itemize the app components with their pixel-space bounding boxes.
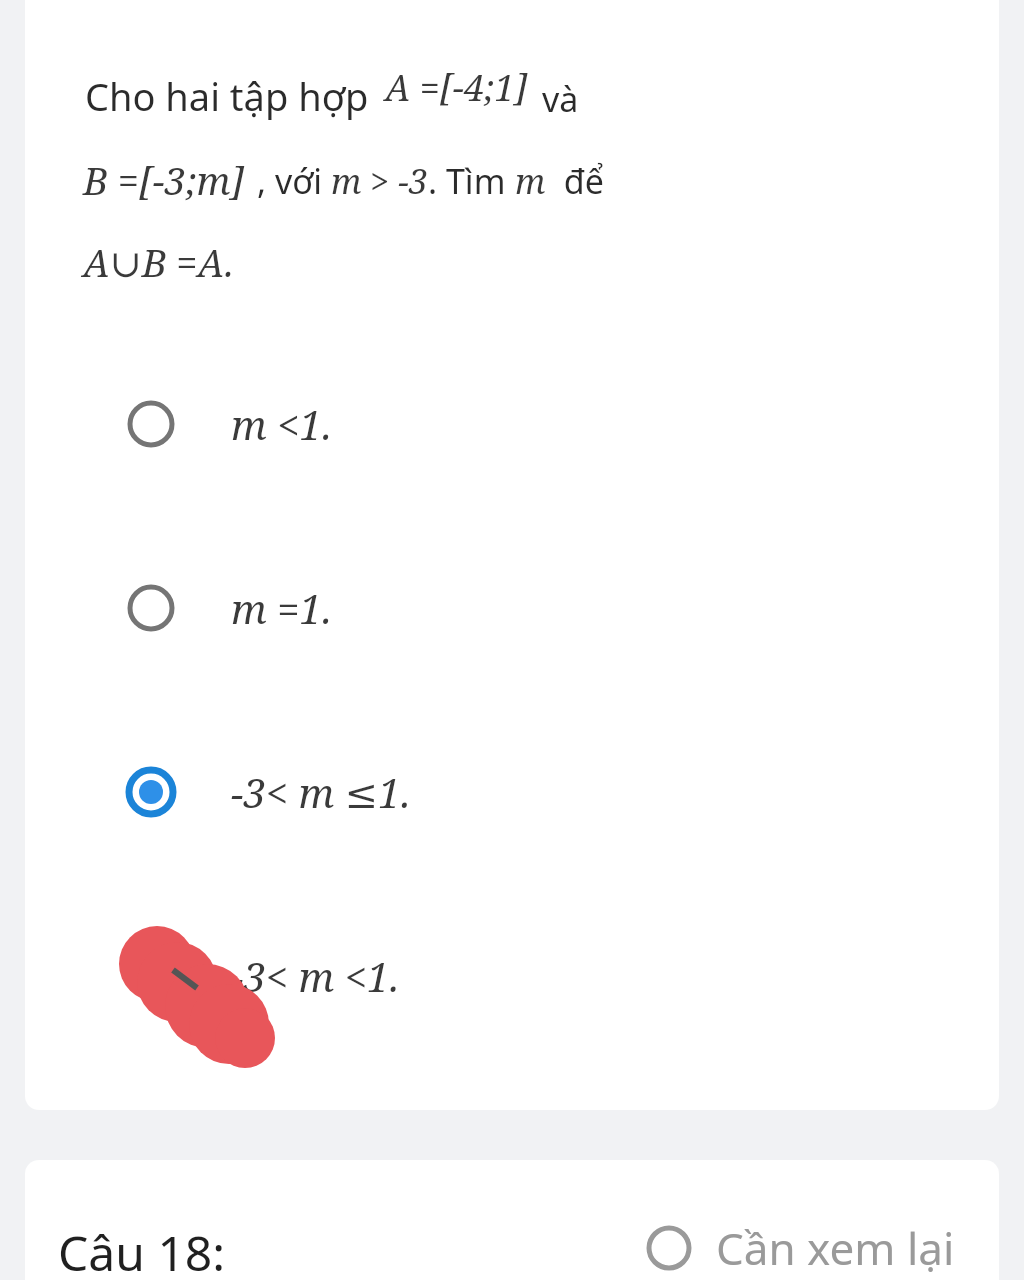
staticText: Câu 18: (58, 1220, 226, 1280)
staticText: m <1. (231, 397, 332, 451)
button[interactable]: m <1. (115, 384, 755, 464)
staticText: , với (257, 158, 331, 204)
button[interactable]: Cần xem lại (640, 1208, 955, 1280)
staticText: m =1. (231, 581, 332, 635)
staticText: -3< m <1. (231, 949, 400, 1003)
staticText: -3< m ≤1. (231, 765, 411, 819)
staticText: A∪B =A. (83, 236, 234, 288)
staticText: để (546, 158, 604, 204)
staticText: m > -3 (331, 158, 428, 204)
button[interactable]: -3< m <1. (115, 936, 755, 1016)
staticText: A =[-4;1] (385, 63, 528, 112)
staticText: B =[-3;m] (83, 154, 245, 206)
staticText: . Tìm (428, 158, 515, 204)
button[interactable]: -3< m ≤1. (115, 752, 755, 832)
button[interactable]: m =1. (115, 568, 755, 648)
staticText: m (515, 158, 546, 204)
other: Cần xem lại (640, 1219, 698, 1277)
staticText: Cần xem lại (716, 1218, 955, 1278)
staticText: Cho hai tập hợp (85, 70, 369, 122)
staticText: và (542, 76, 579, 122)
